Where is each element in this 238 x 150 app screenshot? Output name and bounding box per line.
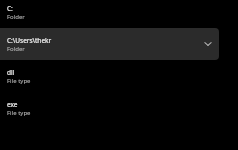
staticText: C:\Users\thekr xyxy=(7,36,52,45)
button[interactable]: C:\Users\thekr xyxy=(0,28,238,60)
staticText: C: xyxy=(7,4,13,13)
staticText: exe xyxy=(7,100,18,109)
staticText: Folder xyxy=(7,13,25,21)
button[interactable]: C: xyxy=(0,0,238,28)
staticText: File type xyxy=(7,77,31,85)
staticText: Folder xyxy=(7,45,25,53)
staticText: File type xyxy=(7,109,31,117)
button[interactable]: exe xyxy=(0,92,238,124)
button[interactable]: dll xyxy=(0,60,238,92)
button[interactable]: Expand xyxy=(202,38,214,50)
staticText: dll xyxy=(7,68,15,77)
